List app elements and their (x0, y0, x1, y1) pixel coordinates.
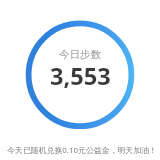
button[interactable]: 今日步数 3,553 (28, 23, 132, 127)
staticText: 3,553 (50, 60, 111, 92)
staticText: 今天已随机兑换0.10元公益金，明天加油！ (2, 145, 160, 156)
staticText: 今日步数 (59, 48, 101, 61)
